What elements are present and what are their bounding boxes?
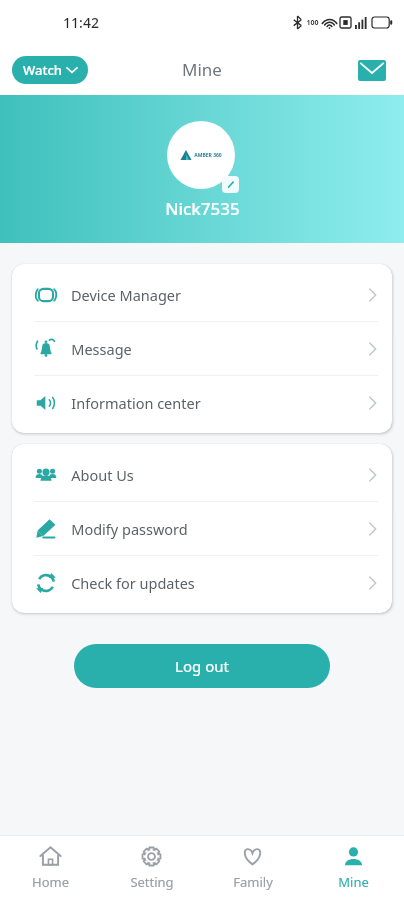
staticText: Mine bbox=[338, 873, 369, 891]
staticText: Watch bbox=[23, 61, 62, 79]
button[interactable]: Information center bbox=[12, 376, 392, 429]
staticText: Home bbox=[32, 873, 69, 891]
button[interactable]: Watch bbox=[12, 56, 88, 84]
staticText: 11:42 bbox=[63, 13, 99, 32]
button[interactable]: Modify password bbox=[12, 502, 392, 555]
staticText: 100 bbox=[306, 18, 319, 28]
button[interactable]: About Us bbox=[12, 448, 392, 501]
staticText: Modify password bbox=[71, 519, 188, 539]
staticText: Device Manager bbox=[71, 285, 181, 305]
button[interactable]: Setting bbox=[101, 836, 202, 900]
button[interactable]: Message bbox=[12, 322, 392, 375]
button[interactable]: Mine bbox=[303, 836, 404, 900]
staticText: AMBER 360 bbox=[194, 152, 222, 159]
staticText: Information center bbox=[71, 393, 201, 413]
button[interactable]: Check for updates bbox=[12, 556, 392, 609]
button[interactable]: Messages bbox=[352, 50, 392, 90]
staticText: Check for updates bbox=[71, 573, 195, 593]
staticText: Log out bbox=[175, 656, 229, 676]
staticText: Message bbox=[71, 339, 132, 359]
staticText: About Us bbox=[71, 465, 134, 485]
button[interactable]: Home bbox=[0, 836, 101, 900]
staticText: Mine bbox=[182, 58, 222, 81]
staticText: Nick7535 bbox=[165, 197, 240, 220]
staticText: Family bbox=[233, 873, 273, 891]
button[interactable]: Device Manager bbox=[12, 268, 392, 321]
button[interactable]: Log out bbox=[74, 644, 330, 688]
staticText: Setting bbox=[130, 873, 174, 891]
button[interactable]: Family bbox=[202, 836, 303, 900]
button[interactable]: Edit profile picture bbox=[167, 121, 239, 193]
